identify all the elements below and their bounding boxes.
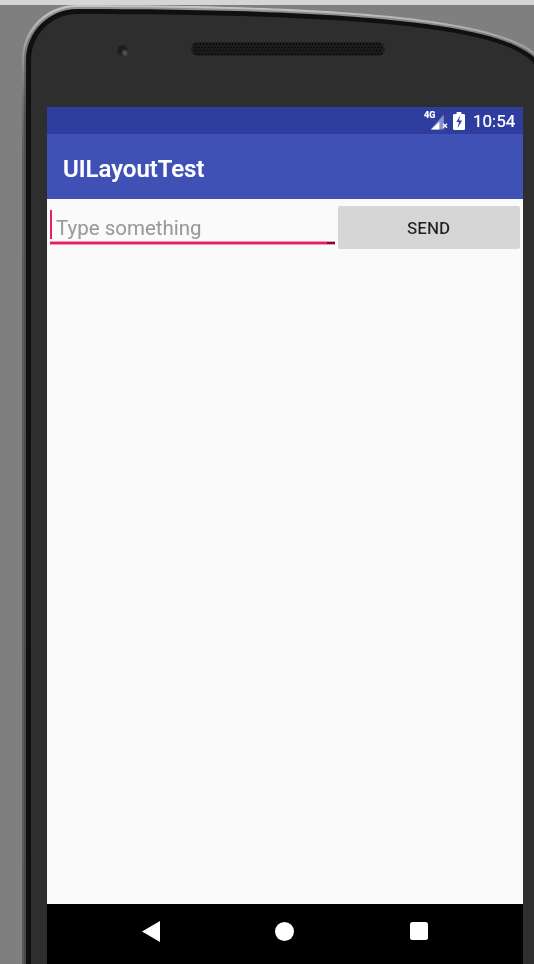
button[interactable]: Recent apps bbox=[395, 905, 442, 957]
staticText: 4G bbox=[424, 110, 436, 121]
button[interactable]: Type something bbox=[50, 206, 335, 251]
button[interactable]: Back bbox=[127, 905, 174, 957]
staticText: Type something bbox=[56, 216, 202, 240]
button[interactable]: Home bbox=[261, 905, 308, 957]
staticText: 10:54 bbox=[473, 111, 516, 131]
staticText: UILayoutTest bbox=[63, 155, 205, 183]
staticText: SEND bbox=[407, 218, 451, 238]
button[interactable]: SEND bbox=[338, 206, 520, 249]
